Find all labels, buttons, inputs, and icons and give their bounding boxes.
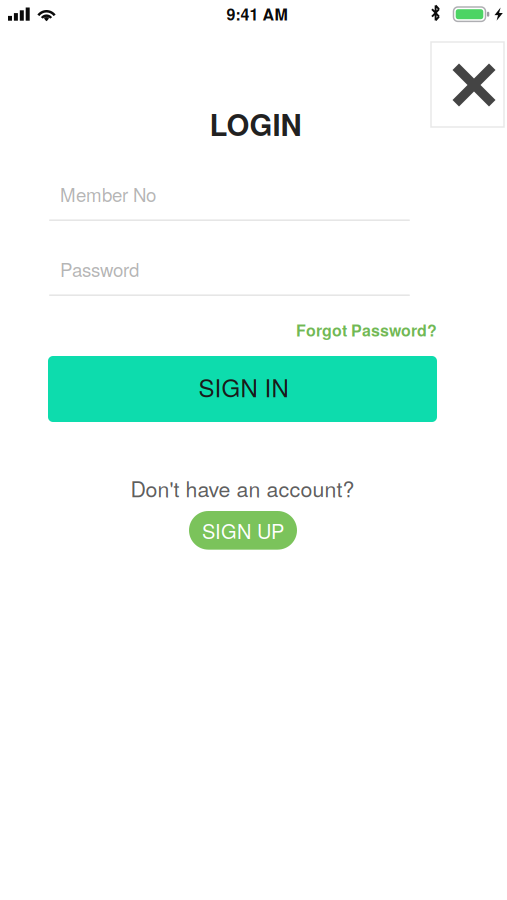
button[interactable]: SIGN UP	[189, 511, 297, 550]
staticText: LOGIN	[209, 103, 301, 145]
staticText: Don't have an account?	[130, 473, 354, 503]
staticText: 9:41 AM	[226, 2, 287, 25]
button[interactable]: Forgot Password?	[48, 319, 437, 341]
button[interactable]: SIGN IN	[48, 356, 437, 422]
staticText: Password	[60, 256, 139, 282]
staticText: Forgot Password?	[296, 318, 437, 341]
staticText: SIGN IN	[198, 370, 288, 404]
staticText: SIGN UP	[202, 516, 284, 545]
button[interactable]: Close	[431, 42, 504, 127]
staticText: Member No	[60, 181, 156, 207]
button[interactable]: Member No	[49, 183, 410, 221]
button[interactable]: Password	[49, 258, 410, 296]
